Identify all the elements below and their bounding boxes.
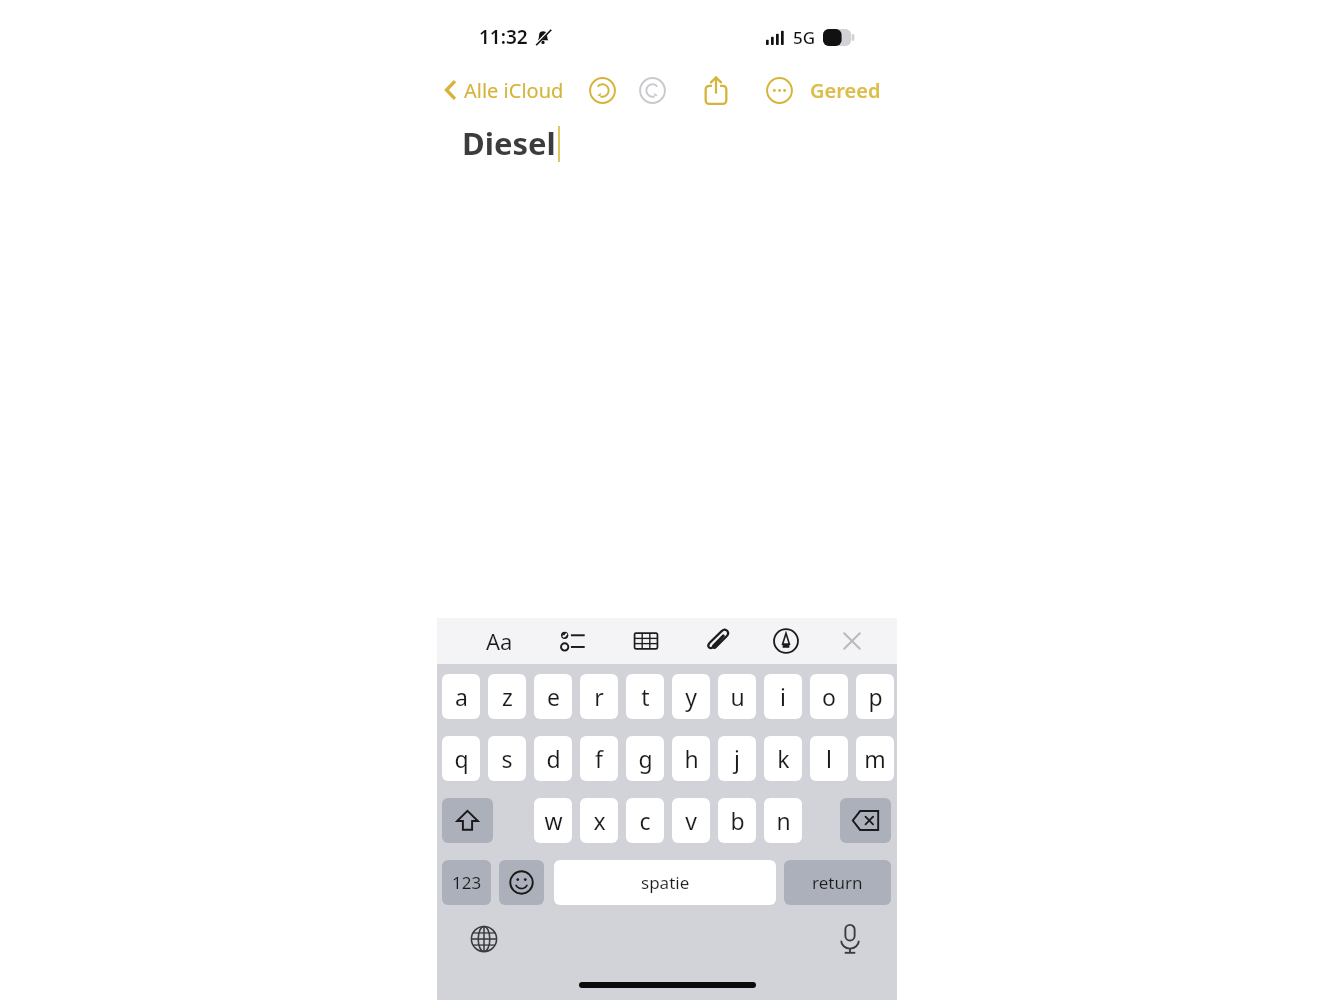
- button[interactable]: j: [718, 736, 756, 781]
- staticText: c: [639, 805, 651, 836]
- button[interactable]: Shift: [442, 798, 493, 843]
- staticText: y: [685, 681, 697, 712]
- button[interactable]: v: [672, 798, 710, 843]
- button[interactable]: p: [856, 674, 894, 719]
- button[interactable]: a: [442, 674, 480, 719]
- button[interactable]: x: [580, 798, 618, 843]
- button[interactable]: Checklist: [551, 618, 595, 664]
- button[interactable]: c: [626, 798, 664, 843]
- button[interactable]: s: [488, 736, 526, 781]
- button[interactable]: w: [534, 798, 572, 843]
- button[interactable]: h: [672, 736, 710, 781]
- staticText: l: [826, 743, 832, 774]
- staticText: k: [777, 743, 790, 774]
- button[interactable]: Share: [694, 68, 738, 112]
- button[interactable]: Redo: [630, 68, 674, 112]
- button[interactable]: g: [626, 736, 664, 781]
- staticText: Gereed: [810, 77, 881, 104]
- staticText: 5G: [793, 26, 816, 49]
- button[interactable]: Gereed: [806, 68, 885, 112]
- staticText: j: [734, 743, 740, 774]
- button[interactable]: l: [810, 736, 848, 781]
- staticText: d: [546, 743, 561, 774]
- button[interactable]: n: [764, 798, 802, 843]
- button[interactable]: o: [810, 674, 848, 719]
- staticText: g: [638, 743, 653, 774]
- staticText: b: [730, 805, 745, 836]
- staticText: w: [544, 805, 563, 836]
- staticText: r: [594, 681, 604, 712]
- button[interactable]: Markup: [764, 618, 808, 664]
- button[interactable]: b: [718, 798, 756, 843]
- staticText: spatie: [641, 871, 690, 894]
- staticText: Alle iCloud: [464, 77, 564, 104]
- staticText: a: [455, 681, 468, 712]
- button[interactable]: d: [534, 736, 572, 781]
- button[interactable]: u: [718, 674, 756, 719]
- staticText: p: [868, 681, 883, 712]
- staticText: 11:32: [479, 24, 528, 50]
- button[interactable]: Table: [624, 618, 668, 664]
- staticText: s: [501, 743, 513, 774]
- staticText: u: [730, 681, 745, 712]
- button[interactable]: Emoji: [499, 860, 544, 905]
- button[interactable]: Attach: [696, 618, 740, 664]
- staticText: v: [685, 805, 697, 836]
- button[interactable]: q: [442, 736, 480, 781]
- button[interactable]: t: [626, 674, 664, 719]
- button[interactable]: z: [488, 674, 526, 719]
- staticText: i: [780, 681, 786, 712]
- button[interactable]: r: [580, 674, 618, 719]
- staticText: q: [454, 743, 469, 774]
- button[interactable]: Close keyboard: [830, 618, 874, 664]
- staticText: x: [593, 805, 606, 836]
- staticText: n: [776, 805, 791, 836]
- button[interactable]: Change keyboard language: [463, 918, 505, 960]
- button[interactable]: More options: [757, 68, 801, 112]
- staticText: e: [547, 681, 560, 712]
- staticText: o: [822, 681, 836, 712]
- button[interactable]: e: [534, 674, 572, 719]
- staticText: f: [595, 743, 603, 774]
- button[interactable]: k: [764, 736, 802, 781]
- button[interactable]: f: [580, 736, 618, 781]
- button[interactable]: 123: [442, 860, 491, 905]
- button[interactable]: i: [764, 674, 802, 719]
- button[interactable]: Dictate: [829, 918, 871, 960]
- button[interactable]: y: [672, 674, 710, 719]
- button[interactable]: return: [784, 860, 891, 905]
- button[interactable]: m: [856, 736, 894, 781]
- button[interactable]: Aa: [477, 618, 521, 664]
- staticText: Aa: [486, 626, 513, 656]
- staticText: 123: [452, 871, 482, 894]
- button[interactable]: spatie: [554, 860, 776, 905]
- staticText: return: [812, 871, 863, 894]
- button[interactable]: Backspace: [840, 798, 891, 843]
- button[interactable]: Alle iCloud: [440, 68, 568, 112]
- button[interactable]: Undo: [580, 68, 624, 112]
- staticText: Diesel: [462, 122, 556, 164]
- staticText: z: [502, 681, 513, 712]
- staticText: h: [684, 743, 699, 774]
- staticText: m: [864, 743, 886, 774]
- staticText: t: [641, 681, 650, 712]
